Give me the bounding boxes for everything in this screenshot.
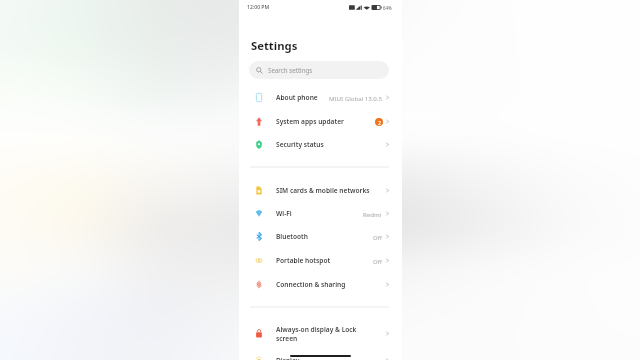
staticText: 2 <box>378 119 381 126</box>
staticText: Redmi <box>363 210 382 218</box>
button[interactable]: System apps updater <box>239 110 402 133</box>
button[interactable]: Connection & sharing <box>239 273 402 296</box>
button[interactable]: Bluetooth <box>239 225 402 248</box>
button[interactable]: SIM cards & mobile networks <box>239 179 402 202</box>
staticText: Always-on display & Lock screen <box>276 325 385 343</box>
staticText: 64% <box>383 5 392 11</box>
button[interactable]: Security status <box>239 133 402 156</box>
button[interactable]: Wi-Fi <box>239 202 402 225</box>
button[interactable]: About phone <box>239 86 402 109</box>
staticText: Search settings <box>268 66 313 74</box>
staticText: 12:00 PM <box>247 4 270 11</box>
staticText: Off <box>373 257 382 265</box>
button[interactable]: Portable hotspot <box>239 249 402 272</box>
staticText: About phone <box>276 93 329 102</box>
button[interactable]: Display <box>239 349 402 360</box>
staticText: Security status <box>276 140 385 149</box>
staticText: System apps updater <box>276 117 375 126</box>
button[interactable]: Always-on display & Lock screen <box>239 322 402 345</box>
staticText: Display <box>276 356 385 360</box>
staticText: Wi-Fi <box>276 209 363 218</box>
staticText: Off <box>373 233 382 241</box>
button[interactable]: Search settings <box>249 61 389 79</box>
staticText: Bluetooth <box>276 232 373 241</box>
staticText: Connection & sharing <box>276 280 385 289</box>
staticText: Settings <box>251 38 298 53</box>
staticText: MIUI Global 13.0.5 <box>329 94 382 102</box>
staticText: Portable hotspot <box>276 256 373 265</box>
staticText: SIM cards & mobile networks <box>276 186 385 195</box>
